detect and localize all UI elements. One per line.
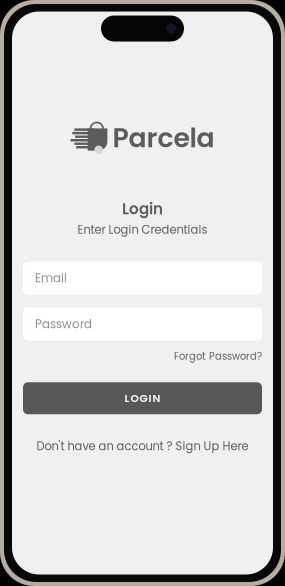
staticText: Forgot Password? (174, 350, 262, 363)
button[interactable]: Don't have an account ? Sign Up Here (36, 438, 248, 454)
staticText: Password (35, 316, 92, 332)
staticText: Parcela (112, 119, 214, 157)
button[interactable]: LOGIN (23, 382, 262, 414)
staticText: Email (35, 270, 67, 286)
button[interactable]: Email (23, 262, 262, 295)
staticText: Enter Login Credentials (77, 222, 207, 238)
staticText: Don't have an account ? Sign Up Here (36, 438, 248, 454)
staticText: Login (122, 198, 163, 220)
button[interactable]: Forgot Password? (174, 350, 262, 363)
button[interactable]: Password (23, 308, 262, 341)
staticText: LOGIN (124, 391, 160, 406)
